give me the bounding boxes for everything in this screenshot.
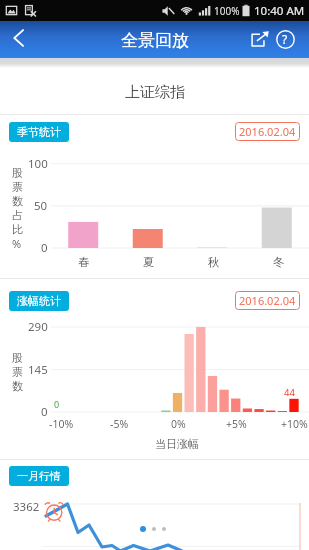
staticText: ? — [282, 31, 288, 47]
button[interactable]: Share — [247, 26, 273, 52]
staticText: 票 — [12, 365, 23, 379]
staticText: 全景回放 — [121, 30, 189, 51]
button[interactable]: Help — [272, 26, 298, 52]
button[interactable]: 一月行情 — [9, 466, 69, 486]
staticText: 上证综指 — [125, 83, 185, 102]
staticText: 145 — [28, 362, 48, 378]
staticText: 290 — [28, 319, 48, 335]
button[interactable]: 2016.02.04 — [235, 291, 300, 310]
button[interactable]: Page 3 — [162, 527, 166, 531]
button[interactable]: Page 1 — [140, 526, 146, 532]
button[interactable]: Page 2 — [152, 527, 156, 531]
staticText: -5% — [110, 417, 129, 431]
staticText: 一月行情 — [17, 469, 61, 483]
staticText: 0% — [171, 417, 186, 431]
staticText: 夏 — [143, 255, 155, 269]
staticText: +10% — [281, 417, 308, 431]
staticText: 44 — [284, 386, 295, 399]
staticText: +5% — [226, 417, 247, 431]
staticText: 0 — [54, 398, 60, 410]
staticText: 0 — [41, 240, 48, 256]
staticText: 冬 — [273, 255, 285, 269]
staticText: 股 — [12, 351, 23, 365]
staticText: % — [12, 236, 22, 251]
button[interactable]: 2016.02.04 — [235, 122, 300, 141]
button[interactable]: Back — [5, 25, 31, 51]
staticText: 数 — [12, 194, 23, 208]
staticText: 季节统计 — [17, 125, 61, 139]
staticText: 春 — [78, 255, 90, 269]
staticText: 2016.02.04 — [239, 124, 296, 139]
button[interactable]: 涨幅统计 — [9, 291, 69, 311]
staticText: 100% — [214, 4, 240, 18]
staticText: 3362 — [13, 499, 40, 515]
staticText: 2016.02.04 — [239, 293, 296, 308]
staticText: 秋 — [208, 255, 220, 269]
staticText: 比 — [12, 222, 23, 236]
staticText: 0 — [41, 404, 48, 420]
staticText: 股 — [12, 166, 23, 180]
staticText: 占 — [12, 208, 23, 222]
staticText: 数 — [12, 379, 23, 393]
staticText: 票 — [12, 180, 23, 194]
staticText: 10:40 AM — [254, 3, 305, 19]
staticText: 当日涨幅 — [155, 437, 199, 451]
staticText: 涨幅统计 — [17, 294, 61, 308]
button[interactable]: 季节统计 — [9, 122, 69, 142]
staticText: 100 — [28, 156, 48, 172]
staticText: -10% — [49, 417, 74, 431]
staticText: 50 — [34, 198, 48, 214]
